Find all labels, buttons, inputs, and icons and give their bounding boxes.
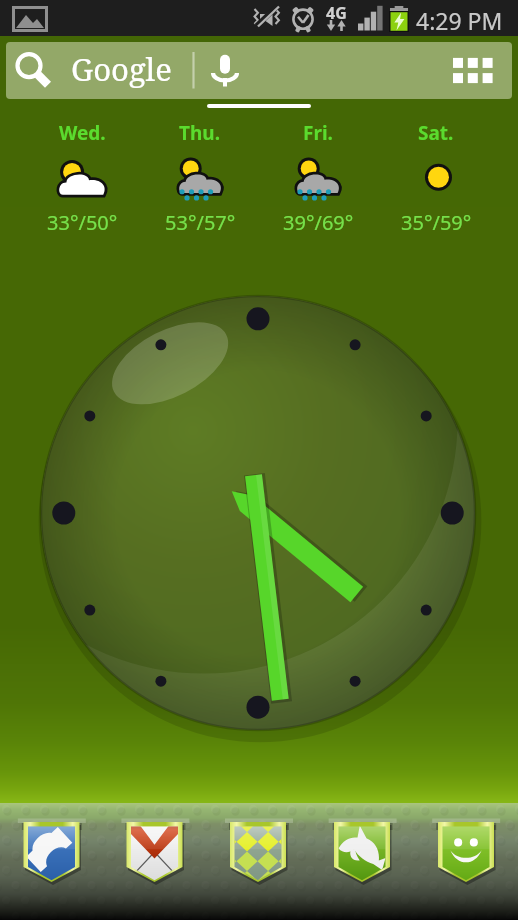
staticText: Sat.: [418, 120, 454, 146]
staticText: 4:29 PM: [416, 5, 503, 36]
button[interactable]: Browser: [310, 803, 414, 920]
staticText: Fri.: [303, 120, 333, 146]
button[interactable]: Sat.: [377, 120, 495, 236]
staticText: 39°/69°: [283, 209, 354, 236]
button[interactable]: Wed.: [23, 120, 141, 236]
staticText: Google: [71, 48, 172, 90]
button[interactable]: Gmail: [103, 803, 206, 920]
button[interactable]: Phone: [0, 803, 103, 920]
staticText: 33°/50°: [47, 209, 118, 236]
staticText: 35°/59°: [401, 209, 472, 236]
staticText: Thu.: [179, 120, 221, 146]
staticText: 4G: [326, 2, 347, 24]
button[interactable]: Fri.: [259, 120, 377, 236]
button[interactable]: Clock: [0, 0, 518, 920]
button[interactable]: Google: [6, 42, 512, 99]
button[interactable]: Play Store: [414, 803, 518, 920]
button[interactable]: Thu.: [141, 120, 259, 236]
staticText: Wed.: [59, 120, 106, 146]
staticText: 53°/57°: [165, 209, 236, 236]
button[interactable]: Gallery: [206, 803, 310, 920]
button[interactable]: All apps: [440, 42, 512, 99]
